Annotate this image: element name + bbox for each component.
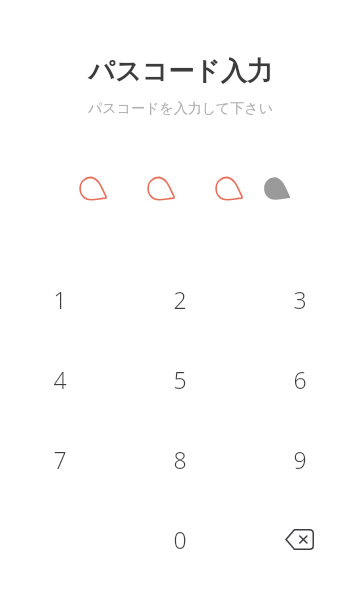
button[interactable]: 8 (120, 419, 240, 499)
button[interactable]: 9 (240, 419, 360, 499)
button[interactable]: 0 (120, 499, 240, 579)
button[interactable]: Backspace (240, 499, 360, 579)
button[interactable]: 5 (120, 339, 240, 419)
staticText: 5 (173, 364, 187, 395)
staticText: 0 (173, 524, 187, 555)
button[interactable]: 4 (0, 339, 120, 419)
button[interactable]: 7 (0, 419, 120, 499)
staticText: 3 (293, 284, 307, 315)
button[interactable]: 2 (120, 259, 240, 339)
staticText: 4 (53, 364, 67, 395)
button[interactable]: 6 (240, 339, 360, 419)
staticText: 2 (173, 284, 187, 315)
staticText: 1 (53, 284, 67, 315)
staticText: 7 (53, 444, 67, 475)
staticText: 8 (173, 444, 187, 475)
staticText: 9 (293, 444, 307, 475)
button[interactable]: 1 (0, 259, 120, 339)
staticText: パスコード入力 (88, 55, 273, 88)
staticText: 6 (293, 364, 307, 395)
staticText: パスコードを入力して下さい (88, 100, 273, 118)
button[interactable]: 3 (240, 259, 360, 339)
